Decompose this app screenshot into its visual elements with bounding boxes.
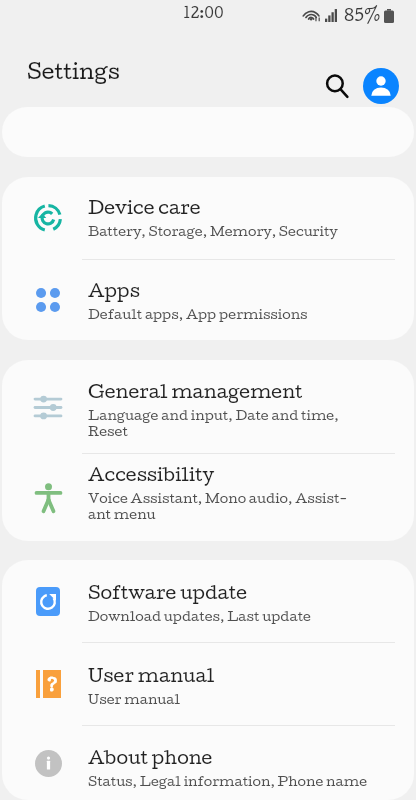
button[interactable]: Accessibility [2, 454, 414, 541]
staticText: Download updates, Last update [88, 608, 311, 624]
staticText: 12:00 [183, 3, 224, 21]
staticText: ? [47, 673, 58, 695]
staticText: Language and input, Date and time, Reset [88, 407, 339, 439]
staticText: Software update [88, 581, 248, 603]
staticText: Settings [27, 58, 120, 84]
button[interactable]: Account [363, 68, 399, 104]
staticText: User manual [88, 664, 215, 686]
staticText: 85% [344, 4, 381, 25]
button[interactable]: Apps [2, 260, 414, 340]
button[interactable]: General management [2, 360, 414, 453]
staticText: Default apps, App permissions [88, 306, 308, 322]
staticText: Accessibility [88, 463, 214, 485]
staticText: About phone [88, 746, 213, 768]
staticText: User manual [88, 691, 181, 707]
staticText: Apps [88, 279, 140, 301]
button[interactable]: Device care [2, 177, 414, 259]
button[interactable]: About phone [2, 726, 414, 800]
button[interactable]: Software update [2, 560, 414, 642]
button[interactable]: Search [322, 71, 352, 101]
staticText: Status, Legal information, Phone name [88, 773, 368, 789]
staticText: General management [88, 380, 303, 402]
button[interactable]: ? [2, 643, 414, 725]
staticText: Voice Assistant, Mono audio, Assist- ant… [88, 490, 348, 522]
staticText: Device care [88, 196, 201, 218]
staticText: Battery, Storage, Memory, Security [88, 223, 338, 239]
